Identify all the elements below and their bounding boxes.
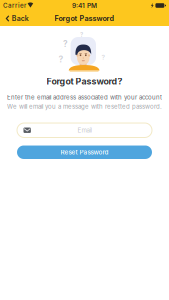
staticText: Reset Password — [60, 148, 108, 156]
button[interactable]: Reset Password — [17, 145, 152, 159]
staticText: Back — [12, 14, 29, 23]
staticText: ? — [80, 31, 83, 38]
staticText: ? — [63, 39, 68, 49]
staticText: ? — [59, 54, 64, 64]
staticText: We will email you a message with resette… — [7, 103, 162, 110]
staticText: Carrier — [3, 2, 26, 9]
staticText: Email — [77, 126, 91, 134]
staticText: Forgot Password — [54, 14, 114, 23]
staticText: ? — [101, 54, 105, 61]
staticText: Forgot Password? — [46, 76, 122, 87]
staticText: 9:41 PM — [72, 1, 97, 9]
staticText: Enter the email address associated with … — [7, 94, 162, 101]
button[interactable]: Back — [1, 11, 33, 26]
